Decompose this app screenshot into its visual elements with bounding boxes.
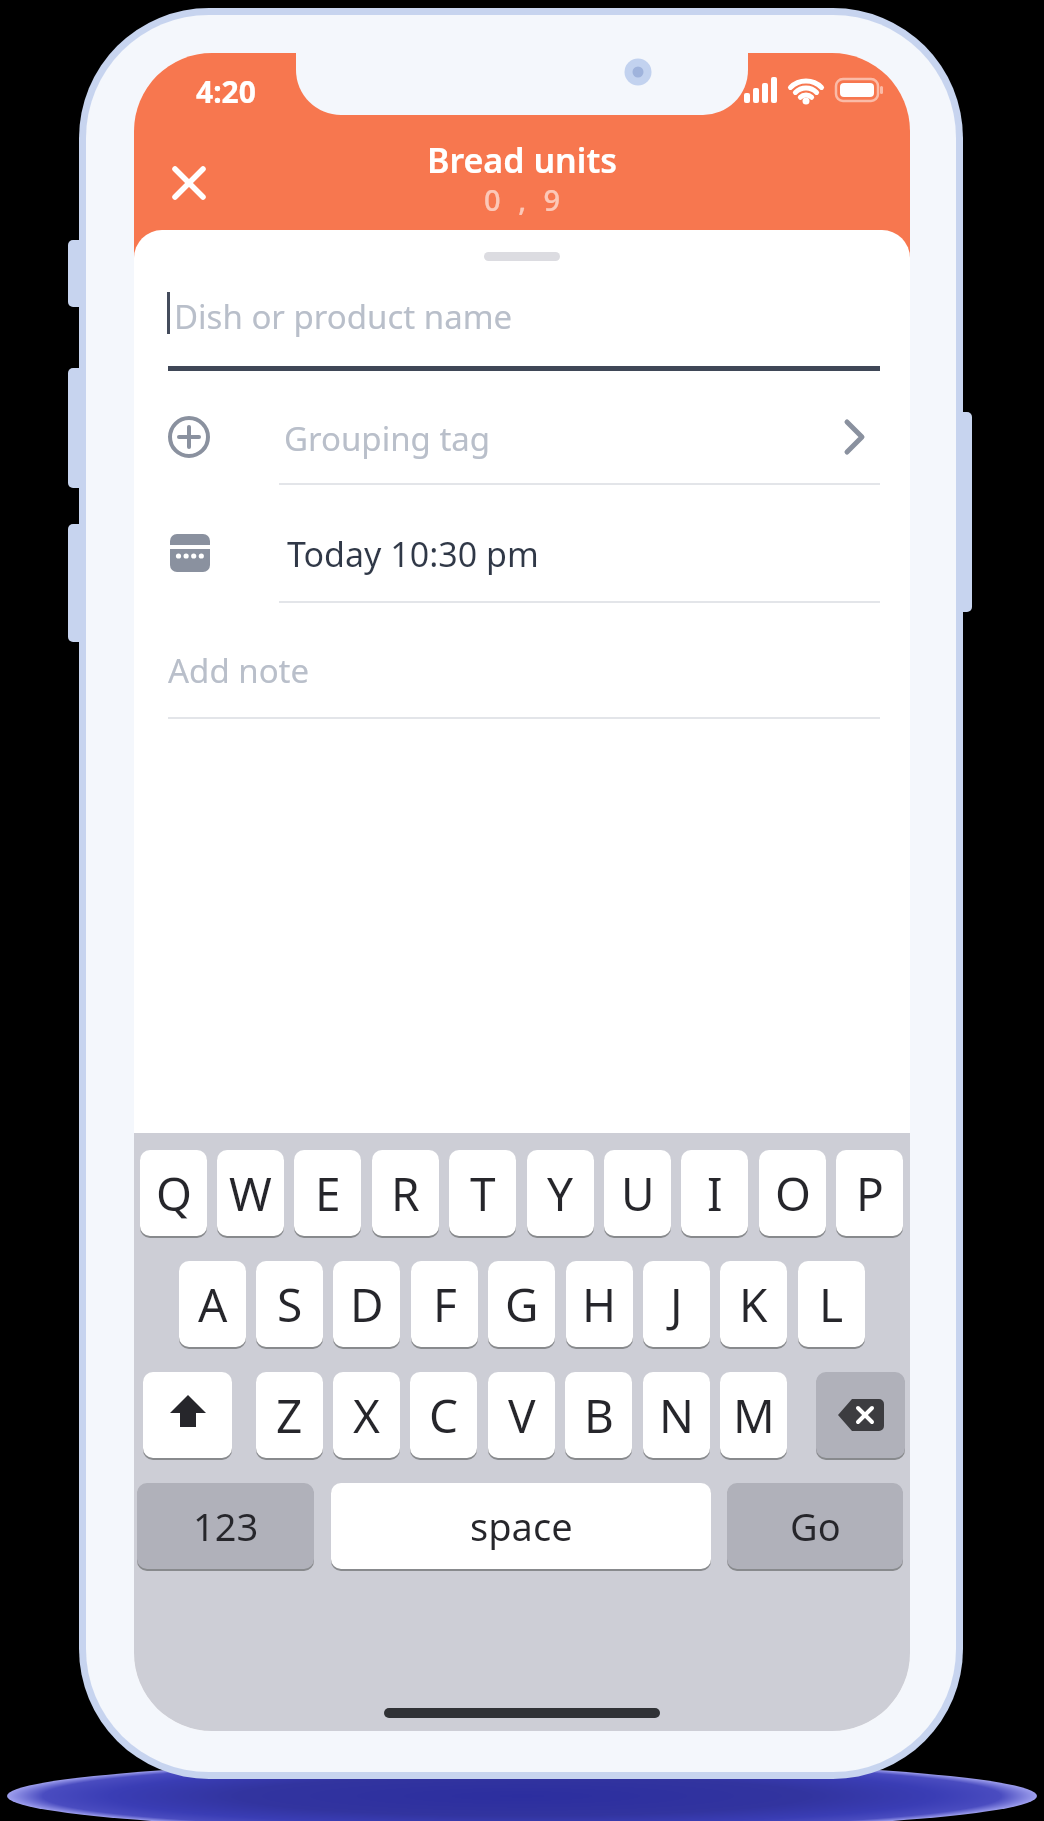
staticText: T [470, 1162, 496, 1225]
button[interactable]: P [836, 1150, 903, 1236]
staticText: L [819, 1273, 844, 1336]
staticText: H [582, 1273, 617, 1336]
button[interactable]: Today 10:30 pm [134, 514, 910, 590]
button[interactable]: V [488, 1372, 555, 1458]
button[interactable]: Z [256, 1372, 323, 1458]
staticText: Bread units [427, 137, 617, 183]
button[interactable]: S [256, 1261, 323, 1347]
button[interactable]: U [604, 1150, 671, 1236]
staticText: 4:20 [196, 71, 256, 112]
button[interactable]: N [643, 1372, 710, 1458]
button[interactable]: I [681, 1150, 748, 1236]
button[interactable]: D [333, 1261, 400, 1347]
button[interactable]: Go [727, 1483, 903, 1569]
button[interactable] [816, 1372, 905, 1458]
staticText: N [659, 1384, 694, 1447]
button[interactable]: J [643, 1261, 710, 1347]
staticText: U [621, 1162, 655, 1225]
button[interactable]: Q [140, 1150, 207, 1236]
staticText: F [433, 1273, 457, 1336]
staticText: A [198, 1273, 228, 1336]
staticText: Y [547, 1162, 574, 1225]
button[interactable]: E [294, 1150, 361, 1236]
staticText: G [505, 1273, 539, 1336]
staticText: W [229, 1162, 272, 1225]
button[interactable]: space [331, 1483, 711, 1569]
staticText: V [508, 1384, 536, 1447]
button[interactable]: Add note [134, 630, 910, 706]
staticText: O [775, 1162, 811, 1225]
staticText: space [470, 1500, 573, 1552]
button[interactable]: G [488, 1261, 555, 1347]
staticText: J [670, 1273, 683, 1336]
button[interactable]: Grouping tag [134, 399, 910, 475]
staticText: Go [790, 1500, 841, 1552]
staticText: B [584, 1384, 614, 1447]
staticText: Q [156, 1162, 192, 1225]
staticText: Today 10:30 pm [287, 531, 539, 577]
staticText: C [429, 1384, 459, 1447]
button[interactable] [154, 148, 224, 218]
staticText: E [315, 1162, 341, 1225]
button[interactable]: O [759, 1150, 826, 1236]
button[interactable]: L [798, 1261, 865, 1347]
staticText: Z [276, 1384, 303, 1447]
staticText: P [856, 1162, 884, 1225]
button[interactable]: M [720, 1372, 787, 1458]
button[interactable]: A [179, 1261, 246, 1347]
button[interactable]: X [333, 1372, 400, 1458]
staticText: 123 [193, 1500, 259, 1552]
staticText: I [707, 1162, 723, 1225]
button[interactable]: B [565, 1372, 632, 1458]
button[interactable]: Y [527, 1150, 594, 1236]
staticText: M [733, 1384, 775, 1447]
button[interactable]: T [449, 1150, 516, 1236]
staticText: S [277, 1273, 303, 1336]
staticText: D [350, 1273, 384, 1336]
button[interactable]: H [566, 1261, 633, 1347]
button[interactable]: C [410, 1372, 477, 1458]
button[interactable]: F [411, 1261, 478, 1347]
button[interactable]: R [372, 1150, 439, 1236]
staticText: Grouping tag [284, 416, 491, 461]
staticText: R [391, 1162, 420, 1225]
staticText: K [739, 1273, 768, 1336]
button[interactable] [143, 1372, 232, 1458]
staticText: X [353, 1384, 380, 1447]
button[interactable]: W [217, 1150, 284, 1236]
staticText: Add note [168, 648, 310, 693]
button[interactable]: K [720, 1261, 787, 1347]
button[interactable]: 123 [137, 1483, 314, 1569]
staticText: Dish or product name [174, 294, 513, 339]
staticText: 0 , 9 [484, 180, 566, 219]
